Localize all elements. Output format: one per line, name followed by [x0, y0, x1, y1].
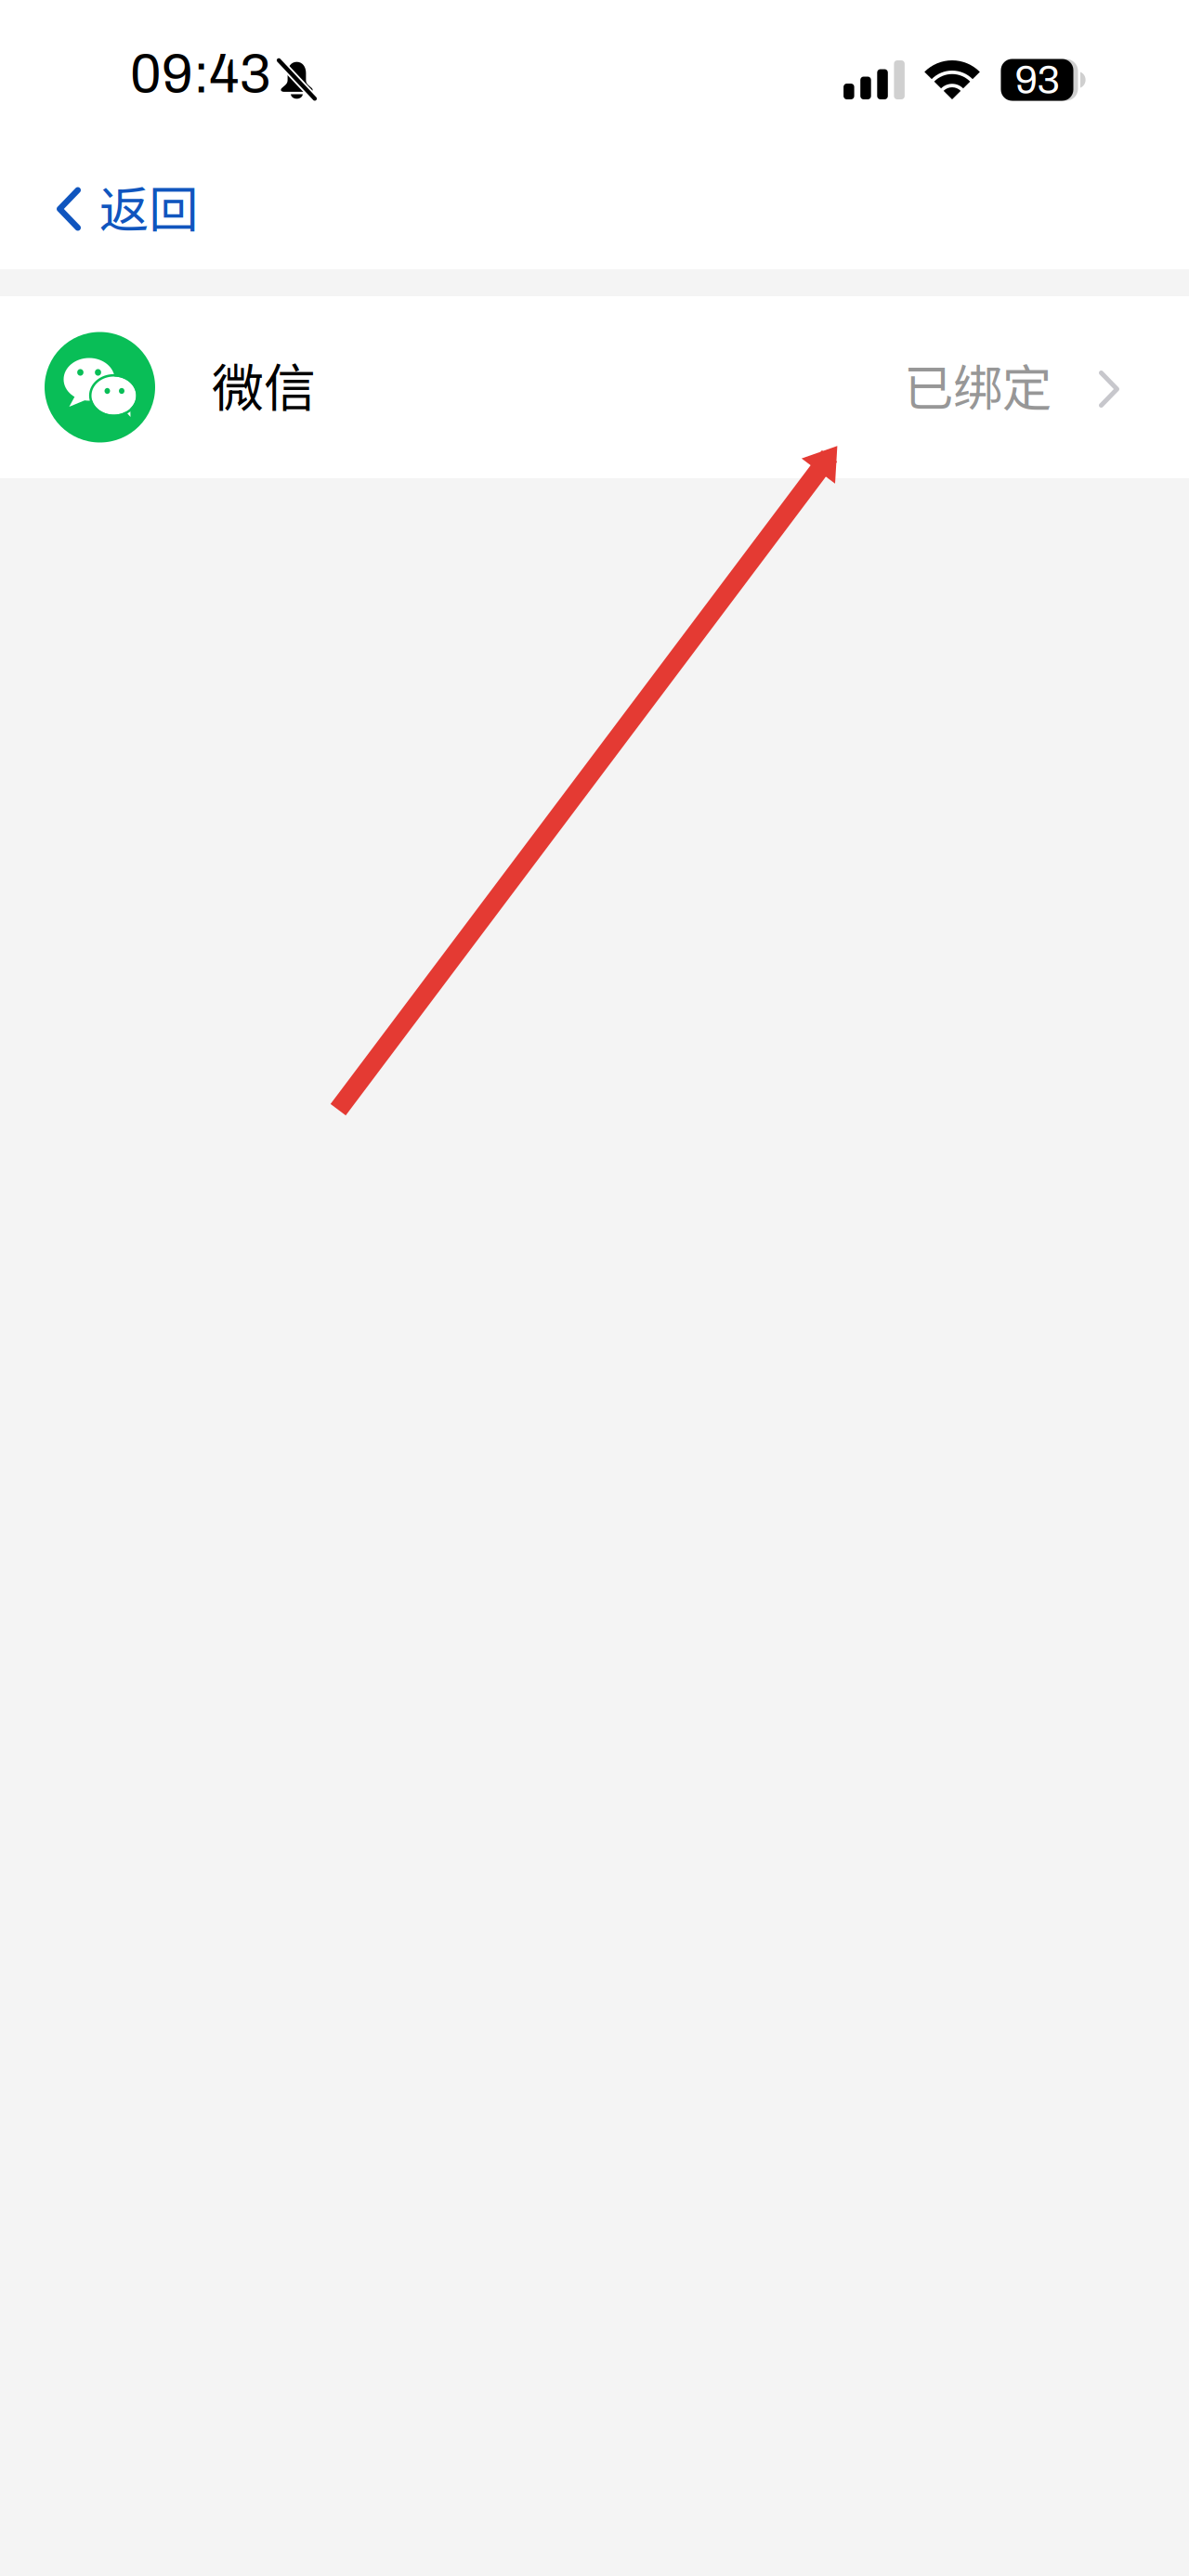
staticText: 09:43 [130, 45, 271, 104]
button[interactable]: 返回 [0, 149, 220, 269]
staticText: 93 [1015, 58, 1059, 101]
button[interactable]: 微信 已绑定 [0, 296, 1189, 478]
staticText: 已绑定 [904, 349, 1052, 420]
staticText: 微信 [212, 347, 316, 422]
staticText: 返回 [99, 170, 198, 242]
